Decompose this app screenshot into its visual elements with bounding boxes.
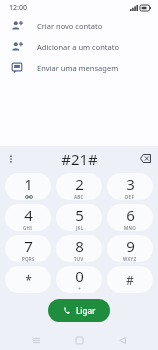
staticText: ABC [74,194,84,200]
button[interactable]: 0 [56,266,102,293]
staticText: Criar novo contato [37,21,103,31]
staticText: 7 [24,236,33,256]
staticText: Ligar [76,305,96,316]
button[interactable]: Adicionar a um contato [0,36,158,57]
staticText: 8 [75,236,84,256]
button[interactable]: Ligar [48,299,110,322]
staticText: * [25,272,32,288]
staticText: 2 [75,174,84,194]
staticText: 4 [24,205,33,225]
staticText: Enviar uma mensagem [37,63,119,73]
staticText: GHI [23,225,33,231]
staticText: 6 [126,205,135,225]
button[interactable]: 8 [56,235,102,262]
staticText: PQRS [22,256,35,262]
staticText: JKL [76,225,84,231]
staticText: TUV [74,256,84,262]
button[interactable]: 4 [5,204,51,231]
staticText: 1 [24,174,33,194]
button[interactable]: 1 [5,173,51,200]
staticText: 12:00 [9,3,27,13]
button[interactable]: * [5,266,51,293]
staticText: WXYZ [123,256,137,262]
button[interactable]: Back [112,330,132,350]
button[interactable]: 2 [56,173,102,200]
button[interactable]: 5 [56,204,102,231]
button[interactable]: More options [0,148,22,170]
staticText: 3 [126,174,135,194]
staticText: 5 [75,205,84,225]
staticText: 9 [126,236,135,256]
button[interactable]: Enviar uma mensagem [0,57,158,78]
staticText: + [78,286,81,293]
staticText: MNO [124,225,137,231]
staticText: #21# [61,149,98,169]
button[interactable]: # [107,266,153,293]
button[interactable]: 9 [107,235,153,262]
staticText: Adicionar a um contato [37,42,119,52]
button[interactable]: Criar novo contato [0,15,158,36]
button[interactable]: 7 [5,235,51,262]
button[interactable]: 6 [107,204,153,231]
staticText: DEF [125,194,135,200]
button[interactable]: 3 [107,173,153,200]
button[interactable]: Backspace [132,146,158,171]
staticText: 0 [75,266,84,286]
staticText: # [126,272,134,288]
button[interactable]: Recent apps [26,330,46,350]
button[interactable]: Home [69,330,89,350]
